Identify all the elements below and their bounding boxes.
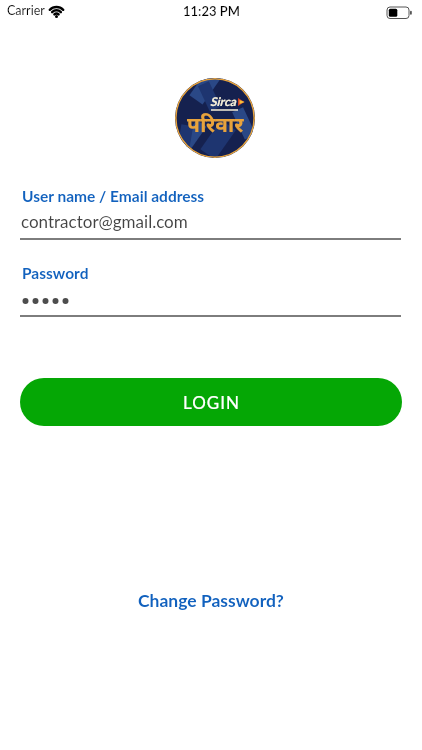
button[interactable]: LOGIN xyxy=(20,378,402,426)
staticText: User name / Email address xyxy=(22,187,205,206)
staticText: 11:23 PM xyxy=(183,3,240,19)
button[interactable]: Password xyxy=(0,256,422,318)
button[interactable]: Change Password? xyxy=(138,590,284,611)
staticText: LOGIN xyxy=(183,392,240,412)
staticText: परिवार xyxy=(187,110,244,139)
staticText: Password xyxy=(22,264,89,283)
staticText: Sirca xyxy=(210,94,236,108)
staticText: Carrier xyxy=(7,3,45,18)
staticText: contractor@gmail.com xyxy=(21,211,188,231)
button[interactable]: User name / Email address xyxy=(0,183,422,243)
